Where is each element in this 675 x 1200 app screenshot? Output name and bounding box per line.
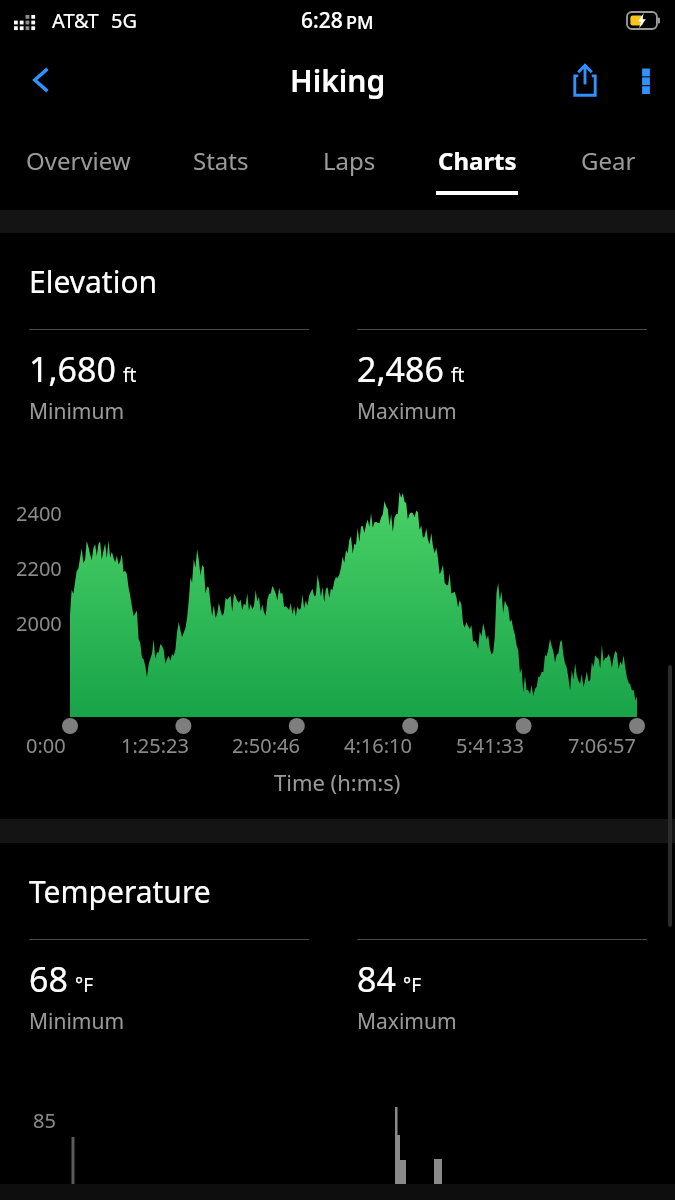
- staticText: Minimum: [29, 1007, 125, 1036]
- staticText: 5:41:33: [456, 732, 524, 759]
- staticText: 6:28: [301, 6, 343, 35]
- staticText: Temperature: [29, 871, 211, 912]
- staticText: AT&T: [52, 7, 99, 34]
- staticText: 68: [29, 956, 68, 1002]
- staticText: PM: [346, 10, 374, 35]
- staticText: ft: [451, 362, 465, 388]
- staticText: 2:50:46: [232, 732, 300, 759]
- staticText: Elevation: [29, 261, 158, 302]
- button[interactable]: Laps: [285, 120, 413, 210]
- staticText: 1,680: [29, 346, 116, 392]
- staticText: Hiking: [290, 60, 386, 101]
- staticText: Maximum: [357, 1007, 457, 1036]
- staticText: 2200: [16, 555, 62, 582]
- staticText: Gear: [581, 144, 636, 177]
- button[interactable]: Gear: [541, 120, 675, 210]
- staticText: 2,486: [357, 346, 444, 392]
- staticText: °F: [75, 972, 93, 998]
- staticText: ft: [123, 362, 137, 388]
- button[interactable]: Overview: [0, 120, 157, 210]
- staticText: 0:00: [26, 732, 66, 759]
- staticText: Stats: [193, 144, 249, 177]
- button[interactable]: Share: [553, 48, 617, 112]
- button[interactable]: More options: [617, 51, 675, 109]
- button[interactable]: Charts: [413, 120, 541, 210]
- button[interactable]: Back: [10, 48, 74, 112]
- staticText: 4:16:10: [344, 732, 412, 759]
- staticText: 1:25:23: [121, 732, 189, 759]
- button[interactable]: Stats: [157, 120, 285, 210]
- staticText: Minimum: [29, 397, 125, 426]
- staticText: Overview: [26, 144, 131, 177]
- staticText: 2400: [16, 500, 62, 527]
- staticText: Charts: [438, 144, 517, 177]
- staticText: 5G: [111, 7, 137, 34]
- staticText: Time (h:m:s): [274, 767, 401, 797]
- staticText: 7:06:57: [568, 732, 636, 759]
- staticText: 84: [357, 956, 396, 1002]
- staticText: 2000: [16, 610, 62, 637]
- staticText: °F: [403, 972, 421, 998]
- staticText: 85: [33, 1107, 56, 1134]
- staticText: Laps: [323, 144, 376, 177]
- staticText: Maximum: [357, 397, 457, 426]
